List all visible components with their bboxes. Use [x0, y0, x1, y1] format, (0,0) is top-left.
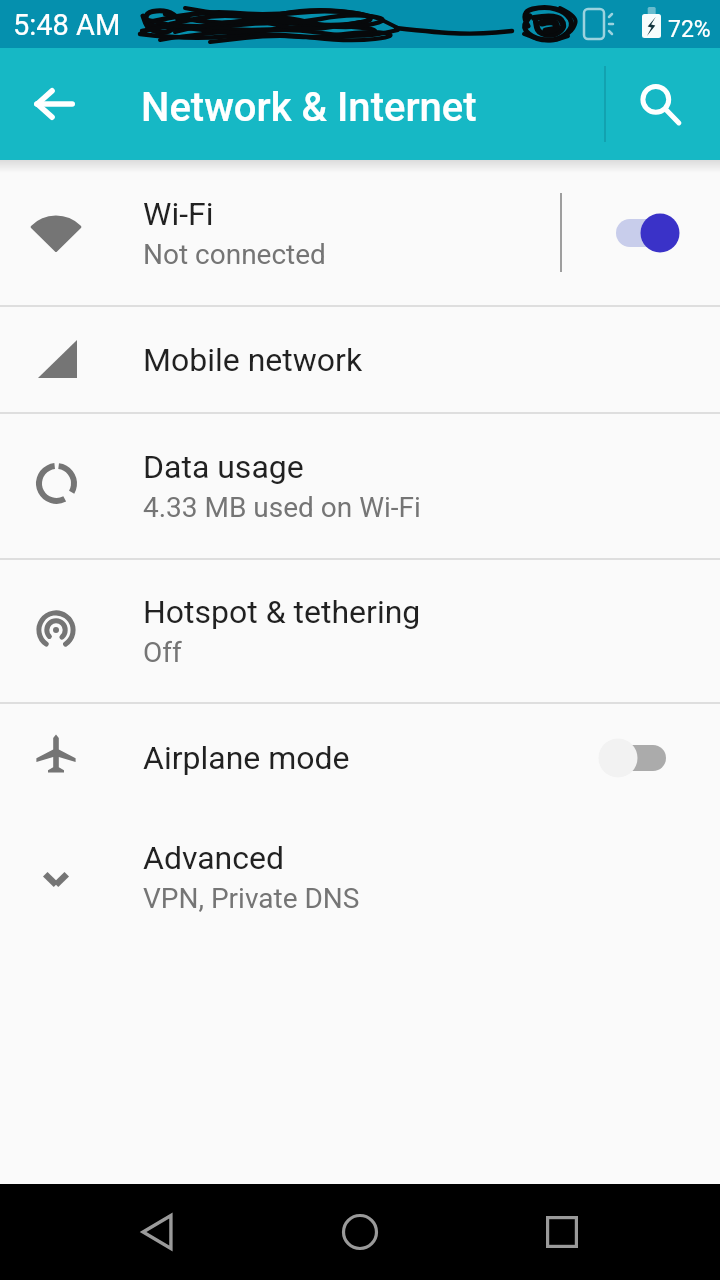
button[interactable]: Recents — [526, 1196, 598, 1268]
staticText: 72% — [668, 16, 711, 43]
staticText: Network & Internet — [141, 84, 477, 131]
staticText: Data usage — [143, 448, 304, 486]
button[interactable]: Home — [324, 1196, 396, 1268]
button[interactable]: Mobile network — [0, 307, 720, 412]
button[interactable]: Back — [12, 62, 96, 146]
button[interactable]: Hotspot & tethering — [0, 560, 720, 702]
button[interactable]: Airplane mode — [0, 704, 720, 812]
staticText: Not connected — [143, 238, 326, 271]
staticText: Advanced — [143, 839, 285, 877]
staticText: Airplane mode — [143, 739, 350, 777]
button[interactable]: Airplane mode off — [596, 736, 684, 780]
staticText: Wi-Fi — [143, 195, 214, 233]
staticText: 5:48 AM — [13, 8, 121, 42]
staticText: Hotspot & tethering — [143, 593, 421, 631]
button[interactable]: Search — [620, 64, 700, 144]
staticText: Off — [143, 636, 182, 669]
button[interactable]: Data usage — [0, 414, 720, 558]
button[interactable]: Wi-Fi — [0, 160, 720, 305]
button[interactable]: Advanced — [0, 812, 720, 938]
staticText: Mobile network — [143, 341, 363, 379]
button[interactable]: Back — [122, 1196, 194, 1268]
staticText: 4.33 MB used on Wi-Fi — [143, 491, 421, 524]
button[interactable]: Wi-Fi on — [596, 211, 684, 255]
staticText: VPN, Private DNS — [143, 882, 360, 915]
